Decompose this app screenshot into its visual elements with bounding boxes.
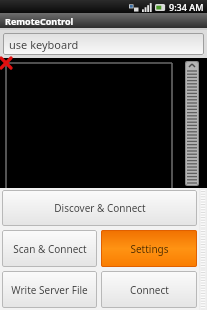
button[interactable]: Write Server File — [2, 271, 97, 308]
staticText: Scan & Connect — [13, 242, 87, 256]
button[interactable]: use keyboard — [3, 33, 204, 55]
staticText: Discover & Connect — [54, 201, 146, 215]
staticText: Settings — [130, 242, 169, 256]
staticText: use keyboard — [9, 37, 79, 52]
button[interactable]: Connect — [101, 271, 197, 308]
staticText: RemoteControl — [5, 15, 74, 27]
staticText: Write Server File — [11, 283, 88, 297]
button[interactable]: Discover & Connect — [2, 190, 197, 226]
button[interactable]: Settings — [101, 230, 197, 267]
button[interactable]: Scan & Connect — [2, 230, 97, 267]
staticText: 9:34 AM — [169, 1, 204, 13]
button[interactable]: Remote screen view — [0, 58, 207, 188]
staticText: Connect — [130, 283, 169, 297]
